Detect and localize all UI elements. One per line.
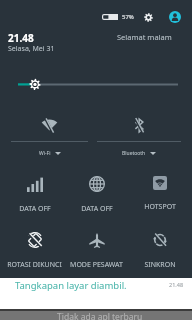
staticText: 57% bbox=[122, 13, 134, 21]
button[interactable]: Tangkapan layar diambil. bbox=[0, 278, 192, 309]
staticText: Wi-Fi bbox=[39, 150, 51, 157]
button[interactable]: DATA OFF bbox=[3, 174, 66, 214]
button[interactable]: Brightness bbox=[0, 72, 192, 94]
button[interactable]: HOTSPOT bbox=[128, 174, 191, 214]
staticText: DATA OFF bbox=[81, 204, 113, 214]
button[interactable]: Bluetooth bbox=[97, 112, 181, 158]
staticText: DATA OFF bbox=[19, 204, 51, 214]
staticText: ROTASI DIKUNCI bbox=[7, 260, 62, 270]
button[interactable]: MODE PESAWAT bbox=[65, 230, 128, 270]
staticText: SINKRON bbox=[144, 260, 176, 270]
staticText: Bluetooth bbox=[122, 150, 146, 157]
button[interactable]: ROTASI DIKUNCI bbox=[3, 230, 66, 270]
button[interactable]: User account bbox=[167, 9, 182, 24]
button[interactable]: Wi-Fi bbox=[11, 112, 88, 158]
staticText: Selasa, Mei 31 bbox=[8, 44, 55, 54]
staticText: 21.48 bbox=[8, 31, 34, 45]
button[interactable]: DATA OFF bbox=[65, 174, 128, 214]
staticText: Tangkapan layar diambil. bbox=[15, 279, 127, 292]
staticText: HOTSPOT bbox=[144, 202, 176, 212]
staticText: 21.48 bbox=[169, 281, 184, 288]
staticText: Selamat malam bbox=[117, 32, 172, 42]
button[interactable]: SINKRON bbox=[128, 230, 191, 270]
staticText: Tidak ada apl terbaru bbox=[57, 311, 143, 320]
button[interactable]: Settings bbox=[140, 9, 156, 25]
staticText: MODE PESAWAT bbox=[70, 260, 123, 270]
